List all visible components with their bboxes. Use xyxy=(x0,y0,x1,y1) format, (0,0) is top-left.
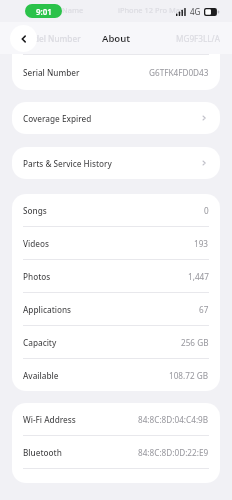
button[interactable]: Back xyxy=(10,25,37,52)
staticText: 1,447 xyxy=(188,271,209,282)
staticText: del Number xyxy=(34,33,81,44)
staticText: Coverage Expired xyxy=(23,113,92,124)
button[interactable]: Applications xyxy=(12,293,220,325)
staticText: iPhone 12 Pro Max xyxy=(118,5,184,15)
staticText: 193 xyxy=(194,238,209,249)
button[interactable]: Wi-Fi Address xyxy=(12,403,220,435)
button[interactable]: Serial Number xyxy=(12,54,220,90)
staticText: Name xyxy=(62,5,84,15)
staticText: 256 GB xyxy=(181,337,209,348)
staticText: Songs xyxy=(23,205,47,216)
button[interactable]: Capacity xyxy=(12,326,220,358)
staticText: Available xyxy=(23,370,59,381)
staticText: About xyxy=(102,32,131,45)
staticText: 0 xyxy=(204,205,209,216)
staticText: Wi-Fi Address xyxy=(23,414,76,425)
button[interactable]: Photos xyxy=(12,260,220,292)
staticText: 84:8C:8D:0D:22:E9 xyxy=(138,447,209,458)
staticText: 9:01 xyxy=(36,6,52,17)
button[interactable]: Coverage Expired xyxy=(12,102,220,134)
button[interactable]: Available xyxy=(12,359,220,391)
button[interactable]: Songs xyxy=(12,194,220,226)
staticText: MG9F3LL/A xyxy=(176,33,220,44)
staticText: 108.72 GB xyxy=(169,370,209,381)
staticText: Bluetooth xyxy=(23,447,62,458)
button[interactable]: Videos xyxy=(12,227,220,259)
staticText: Serial Number xyxy=(23,67,80,78)
staticText: 4G xyxy=(190,6,201,17)
staticText: Applications xyxy=(23,304,72,315)
staticText: Photos xyxy=(23,271,51,282)
button[interactable]: Bluetooth xyxy=(12,436,220,468)
button[interactable]: Parts & Service History xyxy=(12,147,220,179)
staticText: G6TFK4FD0D43 xyxy=(149,67,209,78)
staticText: Parts & Service History xyxy=(23,158,112,169)
staticText: 67 xyxy=(199,304,209,315)
staticText: 84:8C:8D:04:C4:9B xyxy=(138,414,209,425)
staticText: Videos xyxy=(23,238,50,249)
staticText: Capacity xyxy=(23,337,57,348)
